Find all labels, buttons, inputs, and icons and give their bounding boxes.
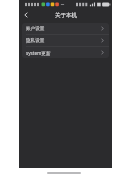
staticText: 隐私设置: [26, 38, 45, 44]
button[interactable]: 账户设置: [22, 23, 109, 34]
staticText: 账户设置: [26, 26, 45, 32]
staticText: 关于本机: [55, 12, 77, 19]
button[interactable]: Back: [21, 10, 31, 20]
staticText: system更新: [26, 50, 51, 56]
button[interactable]: 隐私设置: [22, 35, 109, 46]
button[interactable]: system更新: [22, 47, 109, 58]
